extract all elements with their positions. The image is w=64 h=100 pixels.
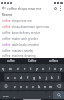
button[interactable]: l (55, 73, 61, 81)
staticText: maker with grinder (11, 37, 38, 41)
button[interactable]: f (25, 73, 31, 81)
staticText: z (14, 84, 16, 89)
button[interactable]: coffee (0, 42, 64, 48)
button[interactable]: coffee (0, 48, 64, 54)
button[interactable]: i (46, 64, 52, 72)
staticText: machine cleaning (11, 54, 36, 58)
button[interactable]: coffee (0, 18, 64, 24)
staticText: Coffee (28, 59, 37, 63)
button[interactable]: s (11, 73, 18, 81)
button[interactable]: p (58, 64, 64, 72)
staticText: coffee (2, 54, 11, 58)
staticText: o (54, 66, 57, 71)
button[interactable]: t (28, 64, 34, 72)
button[interactable]: coffee (0, 24, 64, 30)
staticText: bean delivery service (11, 31, 41, 35)
button[interactable]: q (0, 64, 7, 72)
button[interactable]: Coffee (22, 58, 43, 63)
staticText: coffee (2, 31, 11, 35)
staticText: c (26, 84, 28, 89)
staticText: q (2, 66, 5, 71)
button[interactable]: x (18, 82, 24, 90)
button[interactable]: j (43, 73, 49, 81)
button[interactable]: h (37, 73, 43, 81)
button[interactable]: r (21, 64, 28, 72)
staticText: shops near me (11, 19, 32, 23)
button[interactable]: Back (0, 5, 7, 11)
staticText: f (27, 75, 29, 80)
staticText: Recent (2, 13, 13, 17)
button[interactable]: y (34, 64, 40, 72)
staticText: t (30, 66, 32, 71)
staticText: coffee (2, 19, 11, 23)
button[interactable]: coffee (0, 36, 64, 42)
staticText: h (39, 75, 42, 80)
staticText: v (32, 84, 34, 89)
button[interactable]: Shift (0, 82, 11, 90)
staticText: coffees (49, 59, 59, 63)
button[interactable]: g (31, 73, 37, 81)
staticText: d (20, 75, 23, 80)
button[interactable]: More options (58, 5, 63, 11)
button[interactable]: w (7, 64, 14, 72)
staticText: x (20, 84, 22, 89)
button[interactable]: m (48, 82, 54, 90)
button[interactable]: o (52, 64, 58, 72)
button[interactable]: coffee (0, 30, 64, 36)
button[interactable]: u (40, 64, 46, 72)
button[interactable]: d (18, 73, 25, 81)
staticText: w (9, 66, 12, 71)
button[interactable]: Search (53, 91, 64, 99)
staticText: r (24, 66, 26, 71)
button[interactable]: coffee (0, 58, 22, 63)
button[interactable]: z (11, 82, 18, 90)
staticText: j (46, 75, 47, 80)
button[interactable]: coffees (43, 58, 64, 63)
button[interactable]: v (30, 82, 36, 90)
staticText: . (49, 93, 50, 98)
button[interactable]: c (24, 82, 30, 90)
staticText: n (44, 84, 47, 89)
staticText: k (51, 75, 53, 80)
staticText: l (58, 75, 59, 80)
button[interactable]: a (4, 73, 11, 81)
staticText: coffee (7, 59, 15, 63)
button[interactable]: coffee (0, 54, 64, 58)
staticText: , (14, 93, 15, 98)
staticText: u (42, 66, 45, 71)
button[interactable]: . (46, 91, 53, 99)
staticText: roasters nearby (11, 49, 34, 53)
button[interactable]: , (11, 91, 18, 99)
button[interactable]: Clear query (52, 5, 58, 11)
staticText: e (17, 66, 19, 71)
staticText: shops downtown open now (11, 25, 50, 29)
staticText: coffee (2, 25, 11, 29)
staticText: a (7, 75, 9, 80)
staticText: coffee (2, 49, 11, 53)
staticText: s (14, 75, 16, 80)
staticText: y (36, 66, 38, 71)
staticText: b (38, 84, 41, 89)
button[interactable]: Backspace (54, 82, 64, 90)
button[interactable]: k (49, 73, 55, 81)
staticText: coffee (2, 37, 11, 41)
staticText: ?123 (3, 94, 9, 97)
staticText: i (49, 66, 50, 71)
staticText: coffee (2, 43, 11, 47)
button[interactable]: b (36, 82, 42, 90)
staticText: m (49, 84, 53, 89)
button[interactable]: n (42, 82, 48, 90)
staticText: coffee shops near me (7, 6, 52, 11)
button[interactable]: ?123 (0, 91, 11, 99)
staticText: p (60, 66, 63, 71)
staticText: table books modern (11, 43, 40, 47)
staticText: g (33, 75, 36, 80)
button[interactable]: e (14, 64, 21, 72)
